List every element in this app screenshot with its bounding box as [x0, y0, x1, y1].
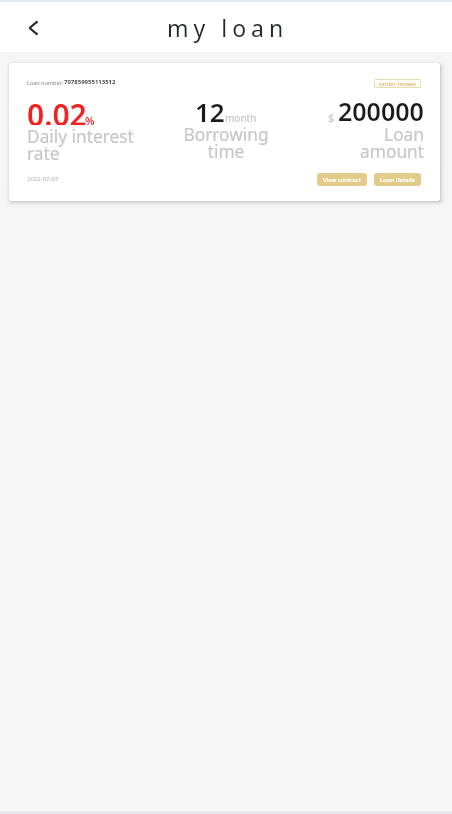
- staticText: View contract: [323, 176, 361, 184]
- staticText: Loan amount: [316, 123, 424, 163]
- staticText: 0.02: [27, 94, 87, 125]
- button[interactable]: Loan number:: [9, 63, 440, 201]
- staticText: Daily interest rate: [27, 125, 135, 165]
- staticText: Loan Details: [380, 176, 415, 184]
- staticText: under review: [379, 80, 416, 88]
- button[interactable]: View contract: [317, 173, 367, 186]
- staticText: 707859955113512: [64, 78, 116, 86]
- button[interactable]: under review: [374, 79, 421, 88]
- staticText: $: [328, 110, 335, 125]
- staticText: 12: [195, 94, 225, 123]
- staticText: month: [225, 111, 257, 125]
- button[interactable]: Back: [0, 2, 62, 52]
- staticText: %: [85, 113, 95, 128]
- button[interactable]: Loan Details: [374, 173, 421, 186]
- staticText: Borrowing time: [172, 123, 280, 163]
- staticText: 200000: [338, 94, 424, 123]
- staticText: 2022-07-07: [27, 175, 59, 183]
- staticText: Loan number:: [27, 79, 64, 86]
- staticText: my loan: [167, 12, 289, 43]
